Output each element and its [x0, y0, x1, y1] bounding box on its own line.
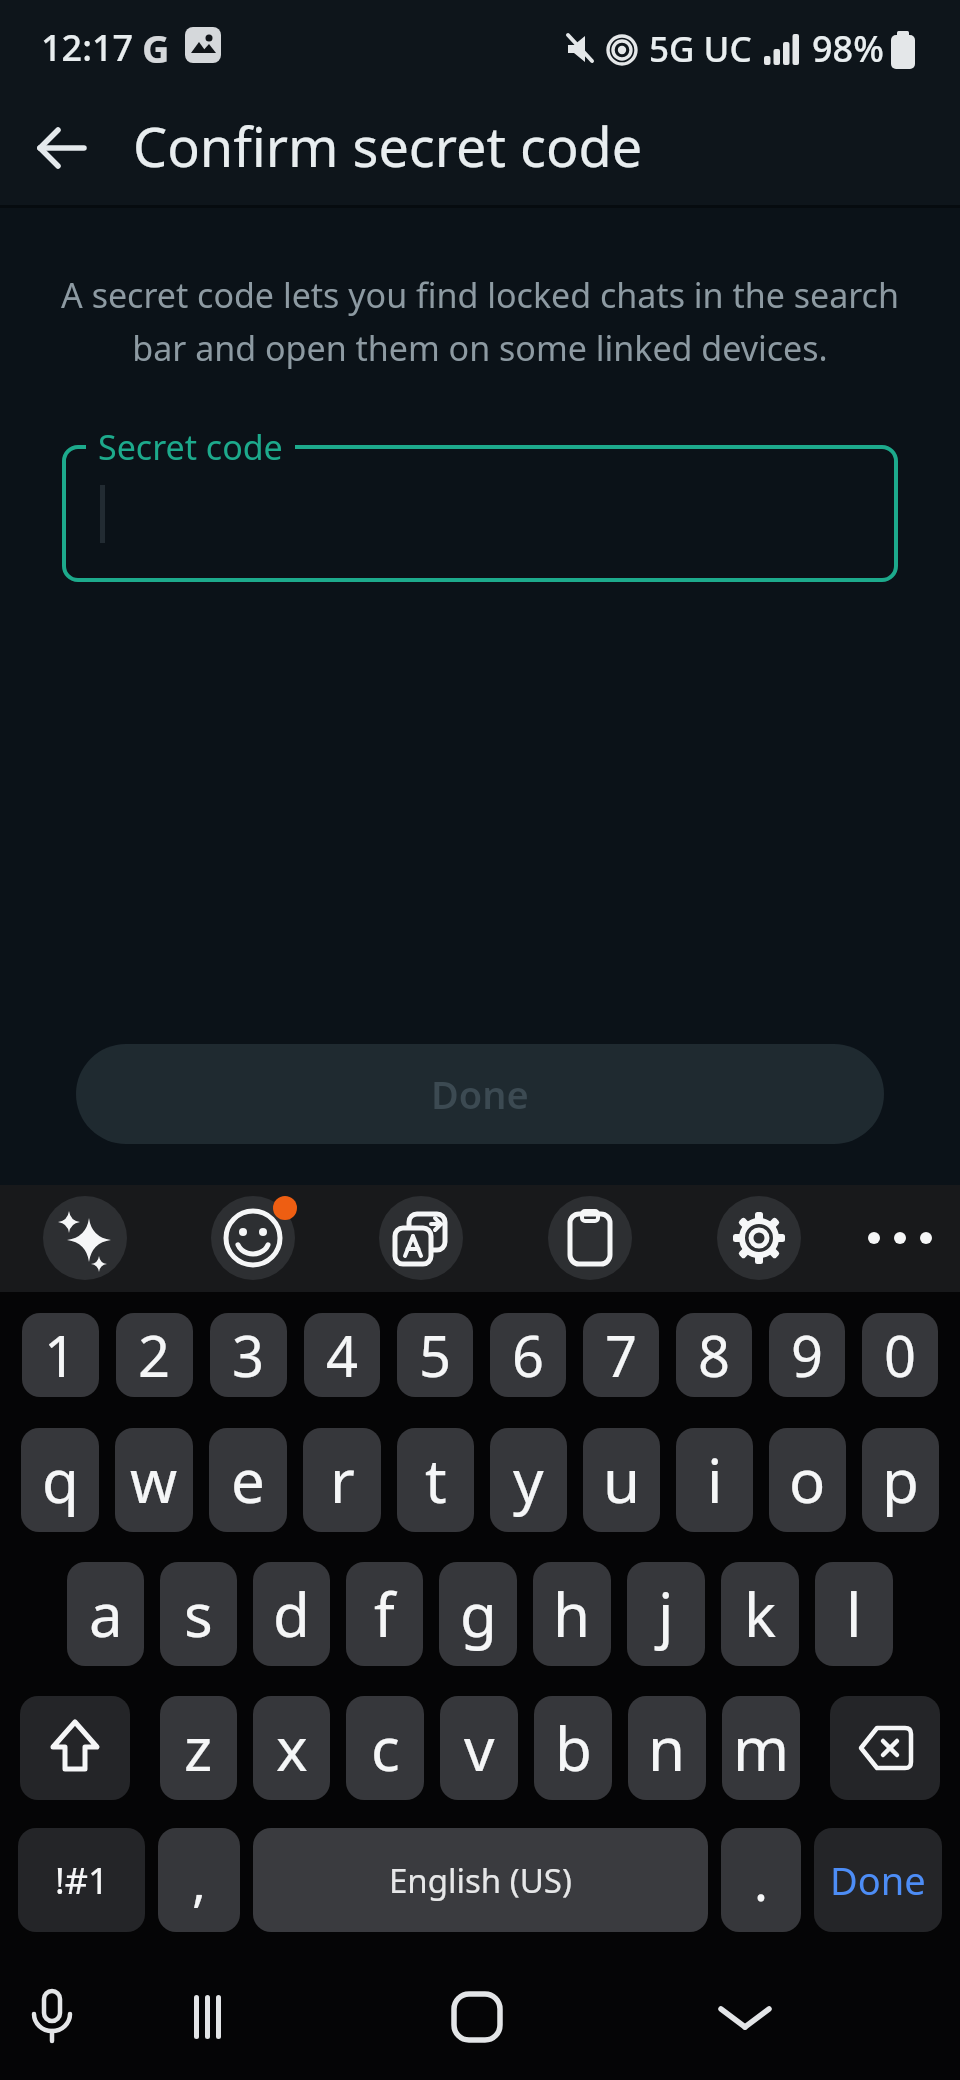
button[interactable]: s [160, 1562, 237, 1666]
button[interactable]: m [722, 1696, 800, 1800]
staticText: o [789, 1439, 826, 1521]
button[interactable]: e [209, 1428, 287, 1532]
staticText: Done [830, 1854, 926, 1906]
staticText: Confirm secret code [133, 109, 643, 183]
button[interactable]: Done [76, 1044, 884, 1144]
button[interactable]: f [346, 1562, 423, 1666]
button[interactable] [379, 1196, 463, 1280]
staticText: 5 [419, 1317, 452, 1393]
button[interactable] [211, 1196, 295, 1280]
button[interactable]: q [21, 1428, 99, 1532]
button[interactable]: Done [814, 1828, 942, 1932]
button[interactable]: 3 [210, 1313, 287, 1397]
staticText: l [846, 1573, 862, 1655]
staticText: q [42, 1439, 79, 1521]
button[interactable] [865, 1203, 935, 1273]
button[interactable]: d [253, 1562, 330, 1666]
button[interactable]: w [115, 1428, 193, 1532]
staticText: j [658, 1573, 674, 1655]
staticText: . [754, 1845, 768, 1916]
staticText: x [276, 1707, 308, 1789]
button[interactable] [437, 1977, 517, 2057]
button[interactable] [43, 1196, 127, 1280]
button[interactable]: 0 [862, 1313, 938, 1397]
button[interactable]: i [676, 1428, 753, 1532]
button[interactable] [717, 1196, 801, 1280]
button[interactable]: y [490, 1428, 567, 1532]
staticText: , [192, 1845, 206, 1916]
staticText: f [374, 1573, 395, 1655]
button[interactable]: 7 [583, 1313, 659, 1397]
staticText: 9 [791, 1317, 824, 1393]
staticText: p [882, 1439, 919, 1521]
button[interactable]: 4 [304, 1313, 380, 1397]
staticText: Done [431, 1068, 529, 1120]
button[interactable]: . [721, 1828, 801, 1932]
staticText: !#1 [55, 1856, 109, 1905]
button[interactable]: a [67, 1562, 144, 1666]
staticText: v [464, 1707, 495, 1789]
button[interactable]: j [627, 1562, 705, 1666]
button[interactable] [28, 114, 96, 182]
button[interactable]: , [158, 1828, 240, 1932]
button[interactable]: h [533, 1562, 611, 1666]
staticText: a [89, 1573, 123, 1655]
button[interactable]: 9 [769, 1313, 845, 1397]
button[interactable]: 5 [397, 1313, 473, 1397]
staticText: h [553, 1573, 591, 1655]
staticText: t [425, 1439, 447, 1521]
staticText: 6 [512, 1317, 545, 1393]
staticText: c [371, 1707, 400, 1789]
staticText: k [744, 1573, 777, 1655]
button[interactable] [705, 1977, 785, 2057]
staticText: English (US) [389, 1858, 572, 1903]
staticText: r [330, 1439, 355, 1521]
button[interactable]: 1 [22, 1313, 99, 1397]
staticText: Secret code [98, 424, 283, 470]
staticText: e [231, 1439, 265, 1521]
staticText: s [184, 1573, 213, 1655]
button[interactable]: 8 [676, 1313, 752, 1397]
staticText: 98% [812, 24, 884, 73]
button[interactable]: k [721, 1562, 799, 1666]
button[interactable]: r [303, 1428, 381, 1532]
button[interactable]: u [583, 1428, 660, 1532]
staticText: 0 [884, 1317, 917, 1393]
staticText: 3 [232, 1317, 265, 1393]
button[interactable]: b [534, 1696, 612, 1800]
button[interactable]: g [439, 1562, 517, 1666]
button[interactable]: p [862, 1428, 939, 1532]
staticText: A secret code lets you find locked chats… [0, 272, 960, 371]
staticText: b [555, 1707, 592, 1789]
staticText: 7 [605, 1317, 638, 1393]
staticText: w [130, 1439, 178, 1521]
button[interactable]: 6 [490, 1313, 566, 1397]
button[interactable] [20, 1696, 130, 1800]
button[interactable]: z [160, 1696, 237, 1800]
button[interactable] [12, 1977, 92, 2057]
staticText: 12:17 [41, 23, 134, 72]
button[interactable]: n [628, 1696, 706, 1800]
staticText: n [648, 1707, 686, 1789]
button[interactable]: c [346, 1696, 424, 1800]
button[interactable] [830, 1696, 940, 1800]
staticText: i [707, 1439, 723, 1521]
staticText: g [460, 1573, 497, 1655]
staticText: d [273, 1573, 310, 1655]
button[interactable] [548, 1196, 632, 1280]
button[interactable]: t [397, 1428, 474, 1532]
button[interactable]: l [815, 1562, 893, 1666]
staticText: G [142, 22, 170, 74]
button[interactable]: 2 [116, 1313, 193, 1397]
button[interactable]: v [440, 1696, 518, 1800]
button[interactable] [62, 445, 898, 582]
staticText: 8 [698, 1317, 731, 1393]
button[interactable]: x [253, 1696, 330, 1800]
button[interactable]: English (US) [253, 1828, 708, 1932]
staticText: z [184, 1707, 213, 1789]
staticText: u [603, 1439, 641, 1521]
button[interactable] [168, 1977, 248, 2057]
button[interactable]: !#1 [18, 1828, 145, 1932]
staticText: 5G UC [649, 25, 752, 73]
button[interactable]: o [769, 1428, 846, 1532]
